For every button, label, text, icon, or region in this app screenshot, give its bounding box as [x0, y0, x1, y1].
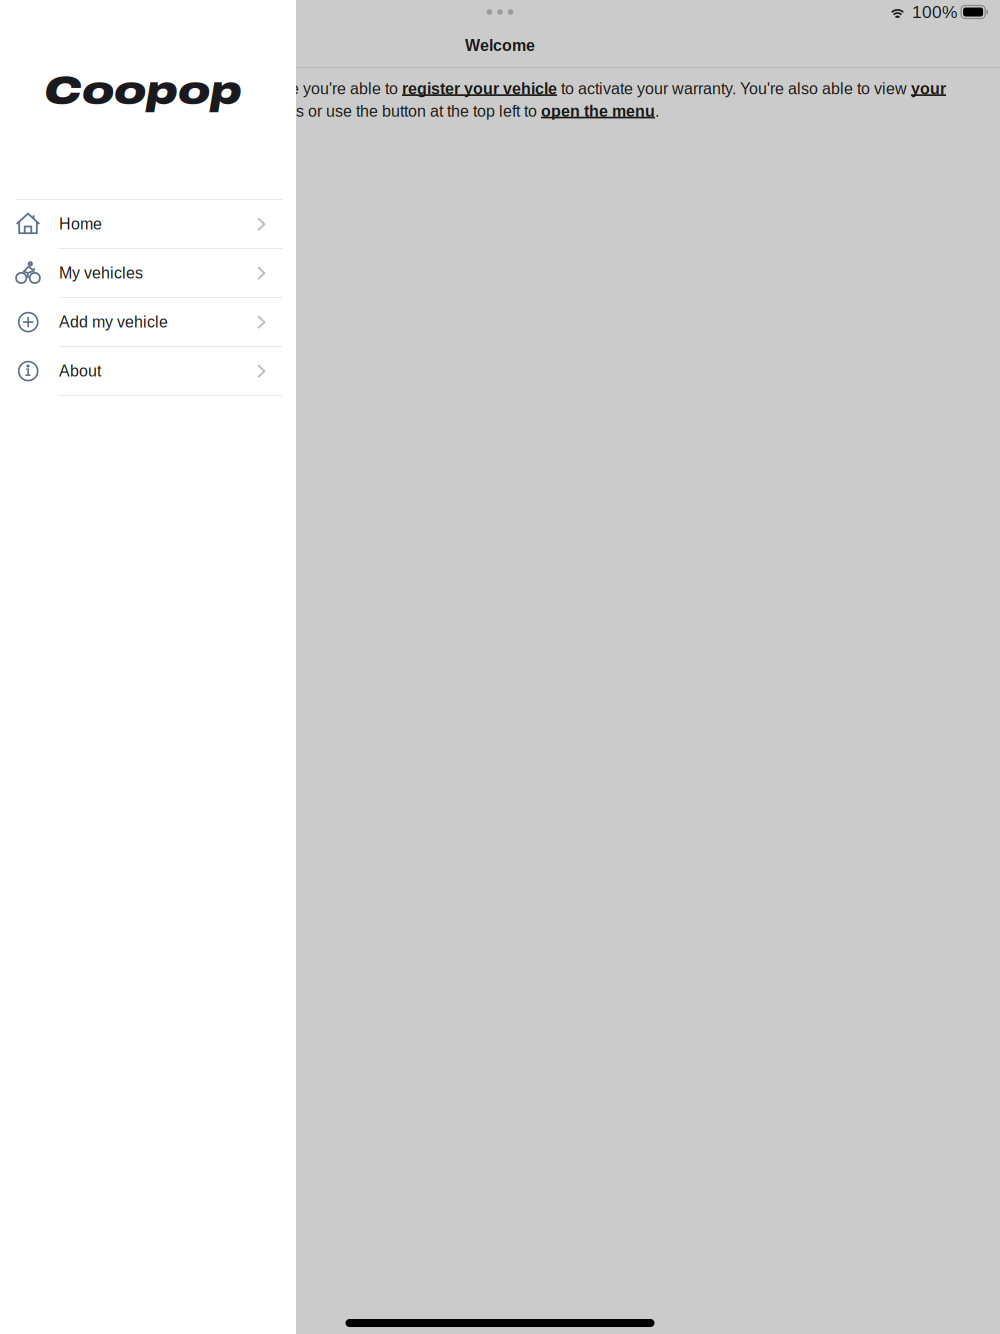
staticText: 100%	[912, 2, 957, 22]
button[interactable]: My vehicles	[0, 249, 296, 298]
staticText: Home	[59, 215, 102, 233]
staticText: About	[59, 362, 101, 380]
button[interactable]: About	[0, 347, 296, 396]
staticText: Welcome	[465, 37, 535, 54]
button[interactable]: Add my vehicle	[0, 298, 296, 347]
staticText: Coopop	[44, 69, 242, 113]
staticText: Welcome to the Coopop app. From here you…	[16, 80, 946, 120]
staticText: Add my vehicle	[59, 313, 168, 331]
button[interactable]: Home	[0, 200, 296, 249]
staticText: My vehicles	[59, 264, 143, 282]
